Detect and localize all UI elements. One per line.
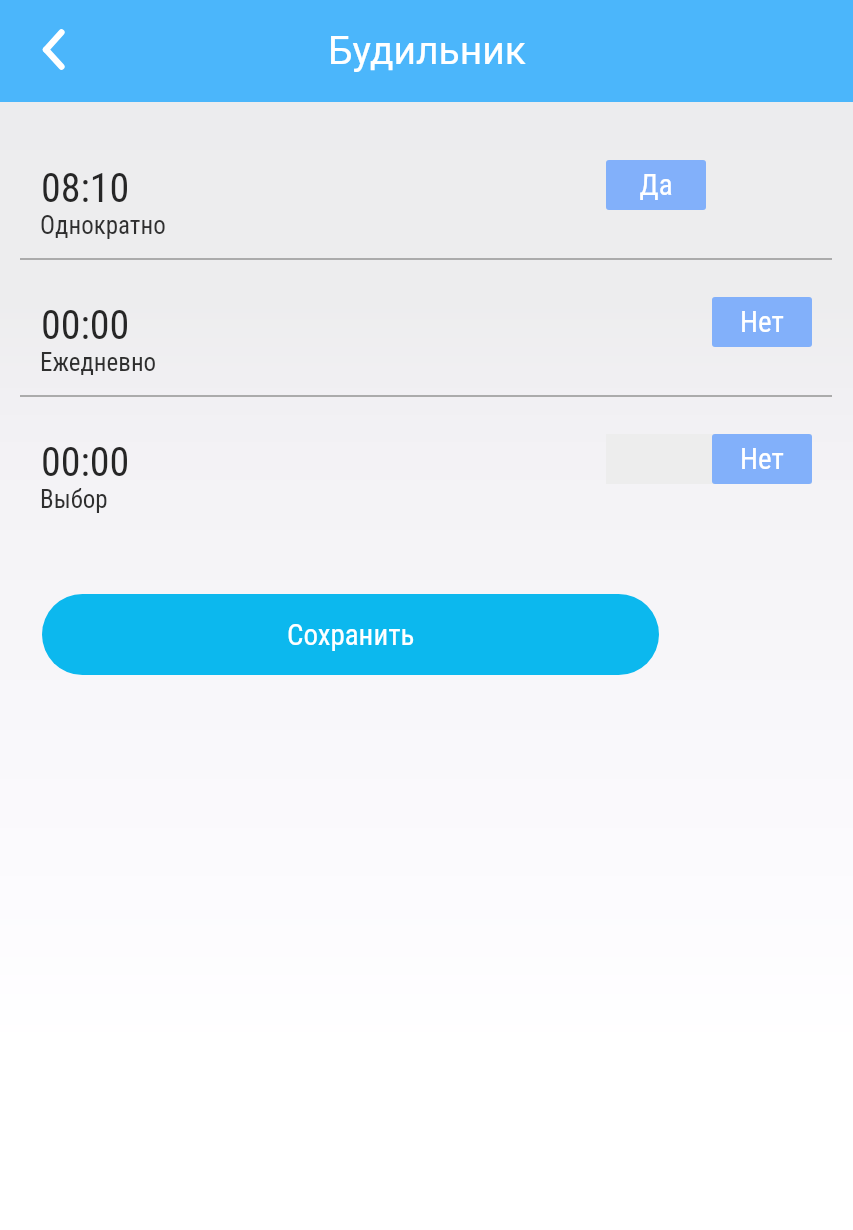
button[interactable]: Сохранить bbox=[42, 594, 659, 675]
staticText: Однократно bbox=[40, 211, 166, 240]
staticText: Сохранить bbox=[287, 618, 415, 652]
button[interactable]: Toggle alarm 08:10, Да bbox=[606, 160, 812, 210]
staticText: Нет bbox=[740, 442, 784, 476]
staticText: 00:00 bbox=[41, 439, 130, 486]
staticText: 08:10 bbox=[41, 165, 130, 212]
staticText: Да bbox=[639, 168, 673, 202]
button[interactable]: 08:10 bbox=[0, 122, 853, 259]
button[interactable]: 00:00 bbox=[0, 396, 853, 533]
staticText: 00:00 bbox=[41, 302, 130, 349]
staticText: Ежедневно bbox=[40, 348, 157, 377]
button[interactable]: Toggle alarm 00:00, Нет bbox=[606, 434, 812, 484]
staticText: Нет bbox=[740, 305, 784, 339]
button[interactable]: 00:00 bbox=[0, 259, 853, 396]
staticText: Будильник bbox=[328, 28, 526, 74]
button[interactable]: Back bbox=[12, 17, 78, 83]
button[interactable]: Toggle alarm 00:00, Нет bbox=[606, 297, 812, 347]
staticText: Выбор bbox=[40, 485, 108, 514]
